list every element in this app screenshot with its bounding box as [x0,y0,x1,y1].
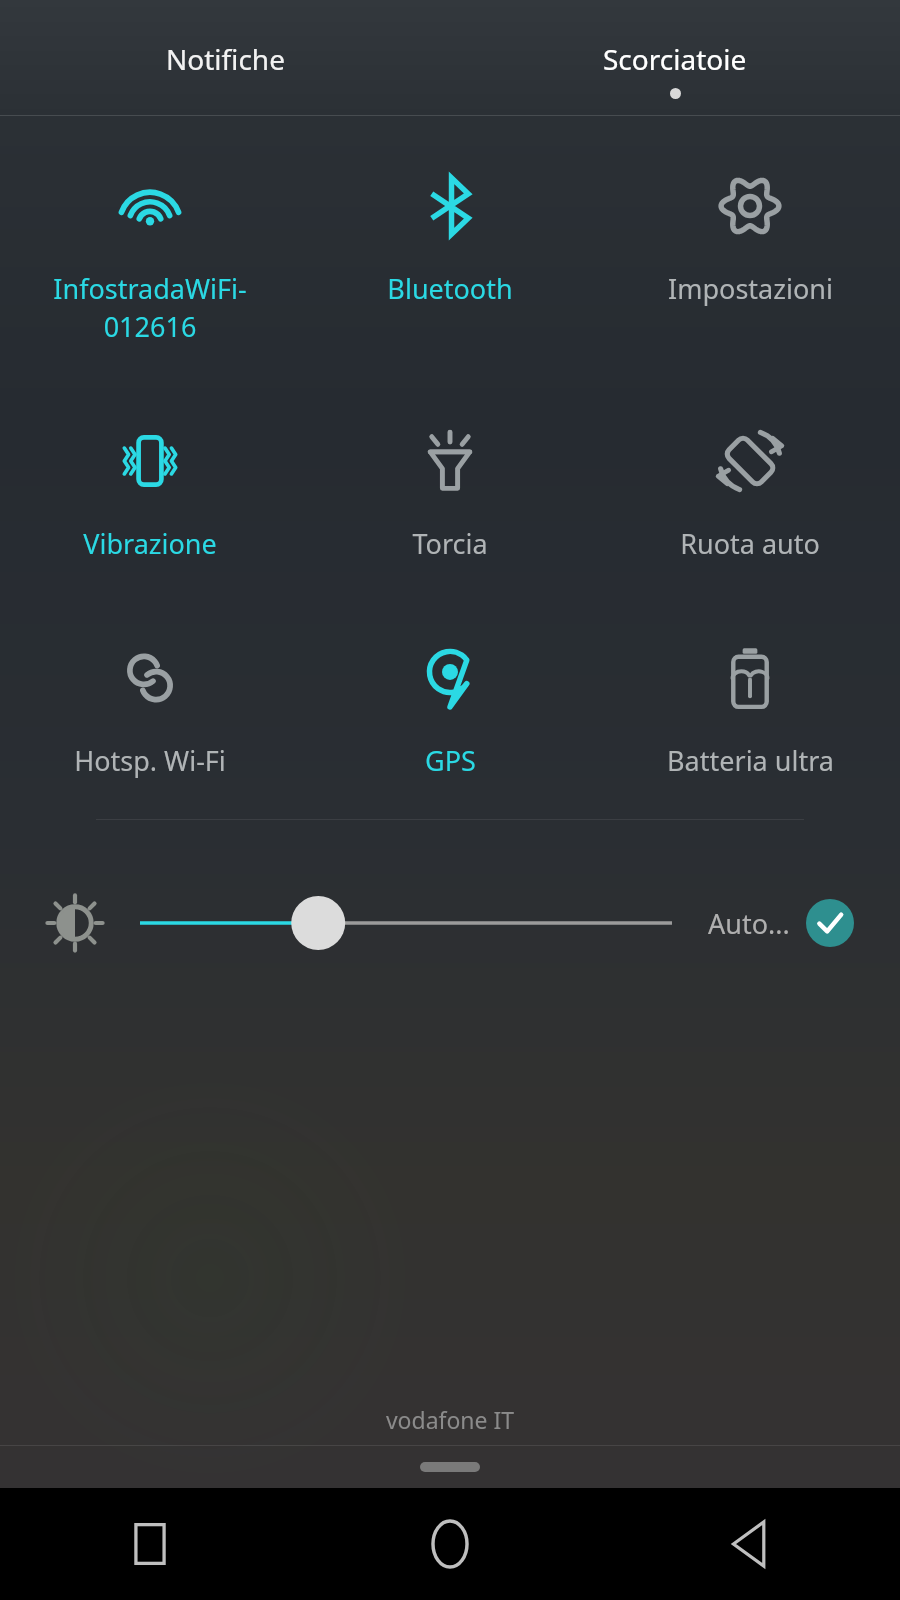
button[interactable]: Auto... [708,899,854,947]
staticText: Notifiche [166,40,285,78]
button[interactable]: Vibrazione [0,423,300,562]
button[interactable]: Ruota auto [600,423,900,562]
staticText: Scorciatoie [603,40,747,78]
button[interactable]: Torcia [300,423,600,562]
button[interactable]: Batteria ultra [600,640,900,779]
button[interactable]: InfostradaWiFi- 012616 [0,168,300,345]
staticText: GPS [425,742,476,779]
button[interactable] [140,895,672,951]
staticText: Impostazioni [668,270,833,307]
button[interactable]: Notifiche [0,0,450,116]
staticText: Bluetooth [387,270,513,307]
staticText: Ruota auto [680,525,820,562]
button[interactable]: GPS [300,640,600,779]
staticText: vodafone IT [0,1404,900,1435]
staticText: Auto... [708,905,790,942]
button[interactable]: Scorciatoie [450,0,900,116]
staticText: Batteria ultra [667,742,834,779]
button[interactable]: Impostazioni [600,168,900,307]
button[interactable]: Bluetooth [300,168,600,307]
button[interactable]: Home [300,1488,600,1600]
staticText: Hotsp. Wi-Fi [74,742,226,779]
button[interactable]: Recents [0,1488,300,1600]
staticText: InfostradaWiFi- 012616 [53,270,247,345]
button[interactable]: Back [600,1488,900,1600]
staticText: Vibrazione [83,525,217,562]
staticText: Torcia [412,525,488,562]
button[interactable]: Hotsp. Wi-Fi [0,640,300,779]
